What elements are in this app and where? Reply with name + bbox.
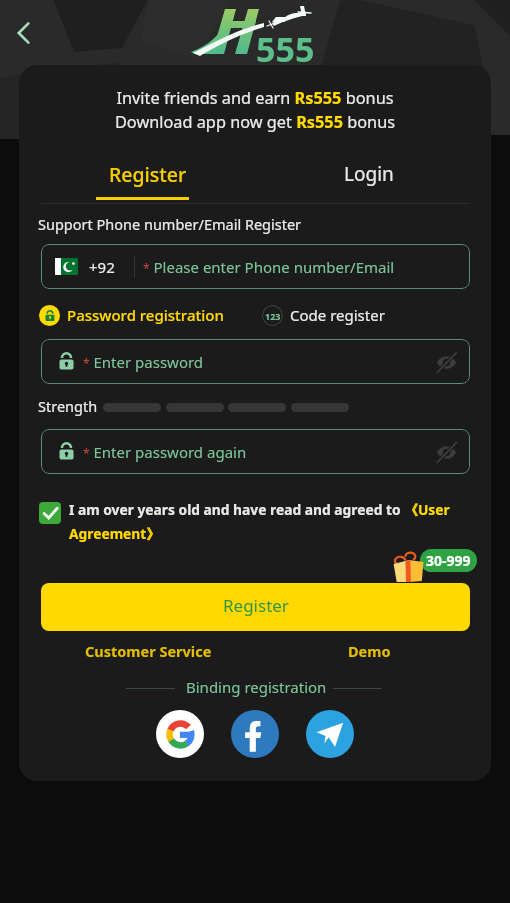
staticText: +92 — [89, 257, 115, 277]
staticText: Strength — [38, 396, 98, 416]
staticText: Support Phone number/Email Register — [38, 214, 302, 234]
staticText: I am over years old and have read and ag… — [69, 500, 471, 543]
button[interactable]: Show password — [430, 346, 462, 378]
staticText: Password registration — [67, 305, 224, 325]
button[interactable]: Sign in with Telegram — [306, 710, 354, 758]
button[interactable]: Back — [4, 13, 44, 53]
staticText: Download app now get Rs555 bonus — [19, 111, 491, 133]
staticText: * Please enter Phone number/Email — [143, 257, 395, 277]
staticText: Customer Service — [85, 641, 212, 661]
button[interactable]: Sign in with Google — [156, 710, 204, 758]
staticText: * Enter password — [83, 352, 204, 372]
button[interactable]: Demo — [334, 640, 404, 662]
staticText: Register — [223, 594, 289, 617]
staticText: Invite friends and earn Rs555 bonus — [19, 87, 491, 109]
button[interactable]: Login — [309, 154, 429, 194]
button[interactable]: 30-999 — [420, 549, 477, 572]
staticText: Demo — [348, 641, 391, 661]
staticText: Register — [109, 161, 187, 188]
button[interactable]: I am over years old and have read and ag… — [39, 500, 471, 543]
button[interactable]: +92 — [41, 244, 470, 289]
staticText: * Enter password again — [83, 442, 247, 462]
button[interactable]: Customer Service — [84, 640, 212, 662]
staticText: Login — [344, 161, 394, 187]
button[interactable]: Register — [41, 583, 470, 631]
button[interactable]: Sign in with Facebook — [231, 710, 279, 758]
staticText: 30-999 — [426, 551, 471, 570]
button[interactable]: Password registration — [39, 304, 224, 326]
button[interactable]: * Enter password — [41, 339, 470, 384]
button[interactable]: * Enter password again — [41, 429, 470, 474]
staticText: 123 — [265, 310, 281, 322]
button[interactable]: Register — [88, 154, 208, 194]
button[interactable]: Show password — [430, 436, 462, 468]
staticText: Binding registration — [186, 677, 327, 697]
button[interactable]: 123 — [262, 304, 385, 326]
staticText: 555 — [256, 26, 315, 72]
staticText: Code register — [290, 305, 385, 325]
